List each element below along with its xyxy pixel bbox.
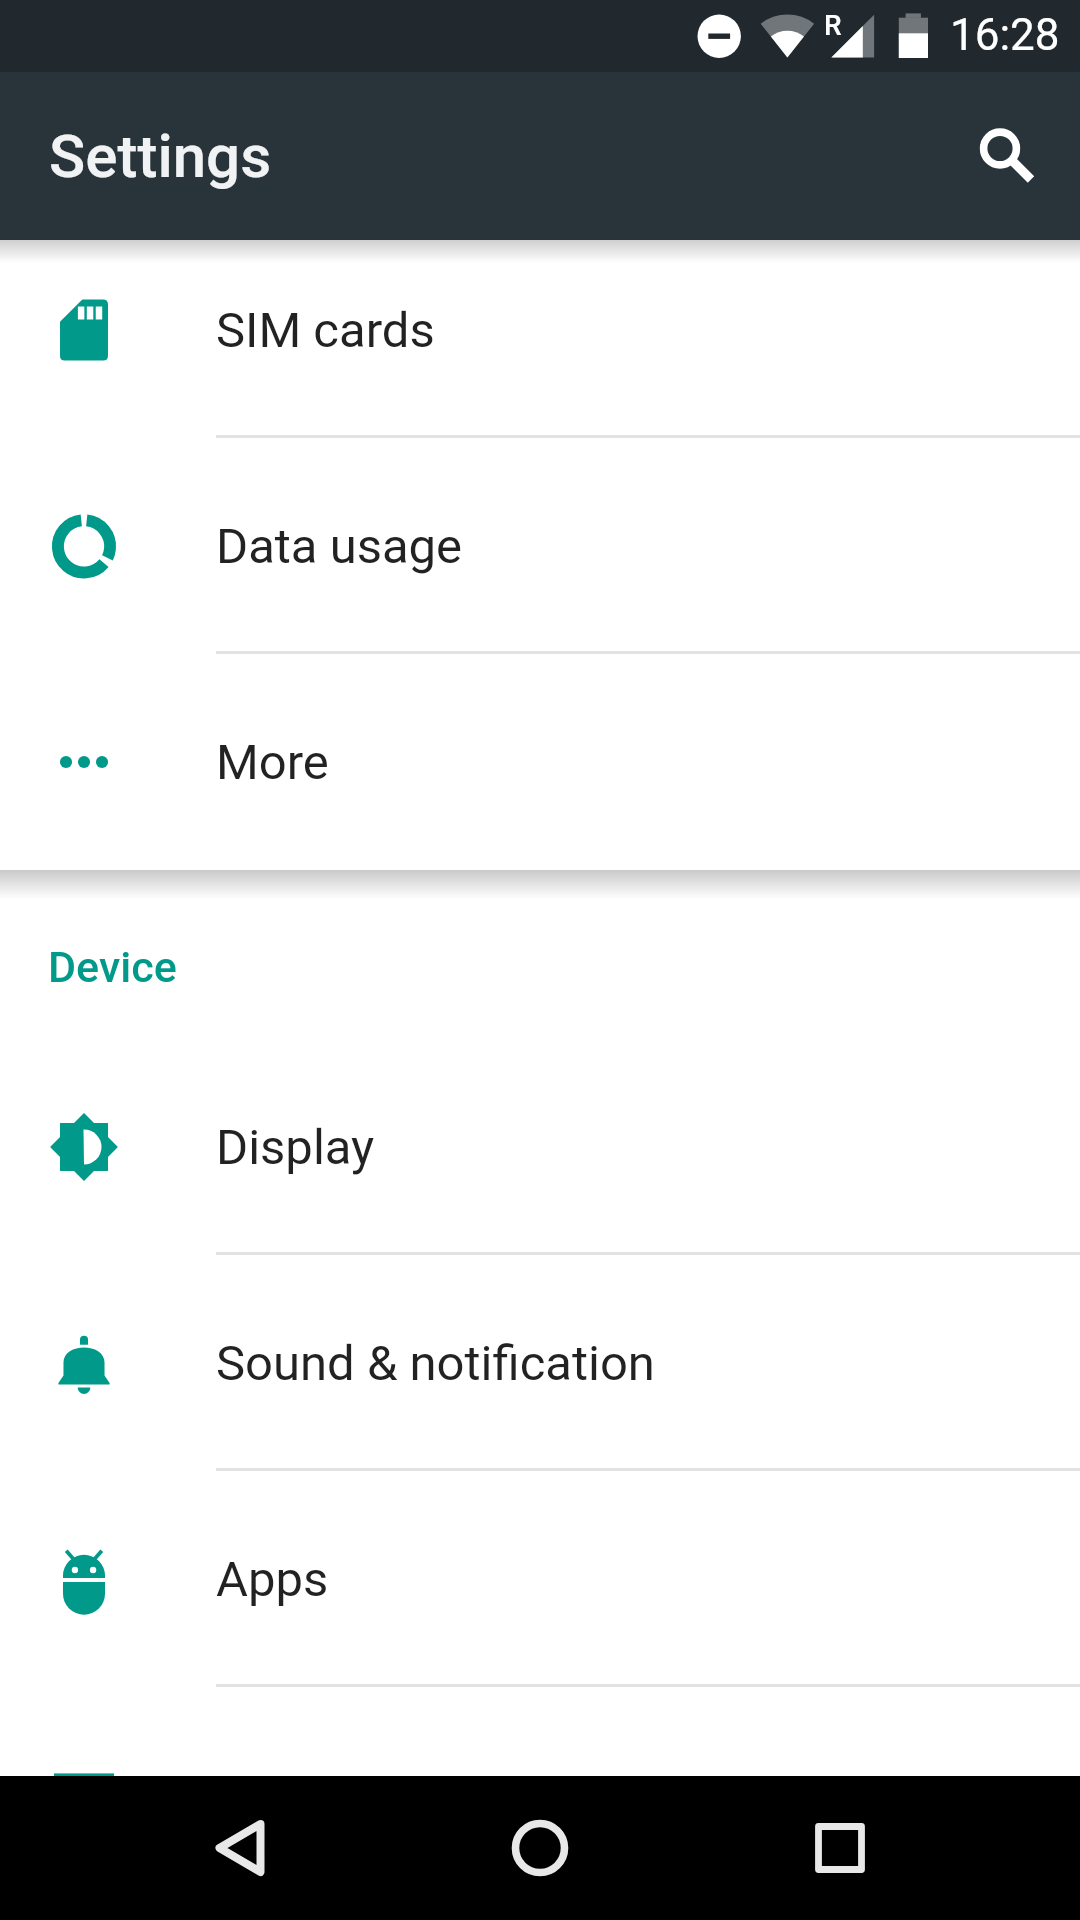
button[interactable]: Recent apps xyxy=(774,1782,906,1914)
button[interactable]: Home xyxy=(474,1782,606,1914)
button[interactable]: Back xyxy=(174,1782,306,1914)
button[interactable]: More xyxy=(0,654,1080,870)
staticText: Settings xyxy=(49,121,272,191)
staticText: R xyxy=(824,9,842,42)
button[interactable]: Search xyxy=(958,108,1054,204)
button[interactable]: Display xyxy=(0,1039,1080,1255)
staticText: Data usage xyxy=(216,518,463,575)
staticText: Device xyxy=(48,942,177,992)
staticText: Display xyxy=(216,1119,375,1176)
button[interactable]: SIM cards xyxy=(0,222,1080,438)
button[interactable]: Sound & notification xyxy=(0,1255,1080,1471)
button[interactable]: Storage xyxy=(0,1687,1080,1903)
staticText: Storage xyxy=(216,1767,385,1824)
staticText: More xyxy=(216,734,329,791)
staticText: Apps xyxy=(216,1551,329,1608)
staticText: Sound & notification xyxy=(216,1335,655,1392)
staticText: SIM cards xyxy=(216,302,435,359)
button[interactable]: Data usage xyxy=(0,438,1080,654)
staticText: 16:28 xyxy=(950,9,1060,61)
button[interactable]: Apps xyxy=(0,1471,1080,1687)
